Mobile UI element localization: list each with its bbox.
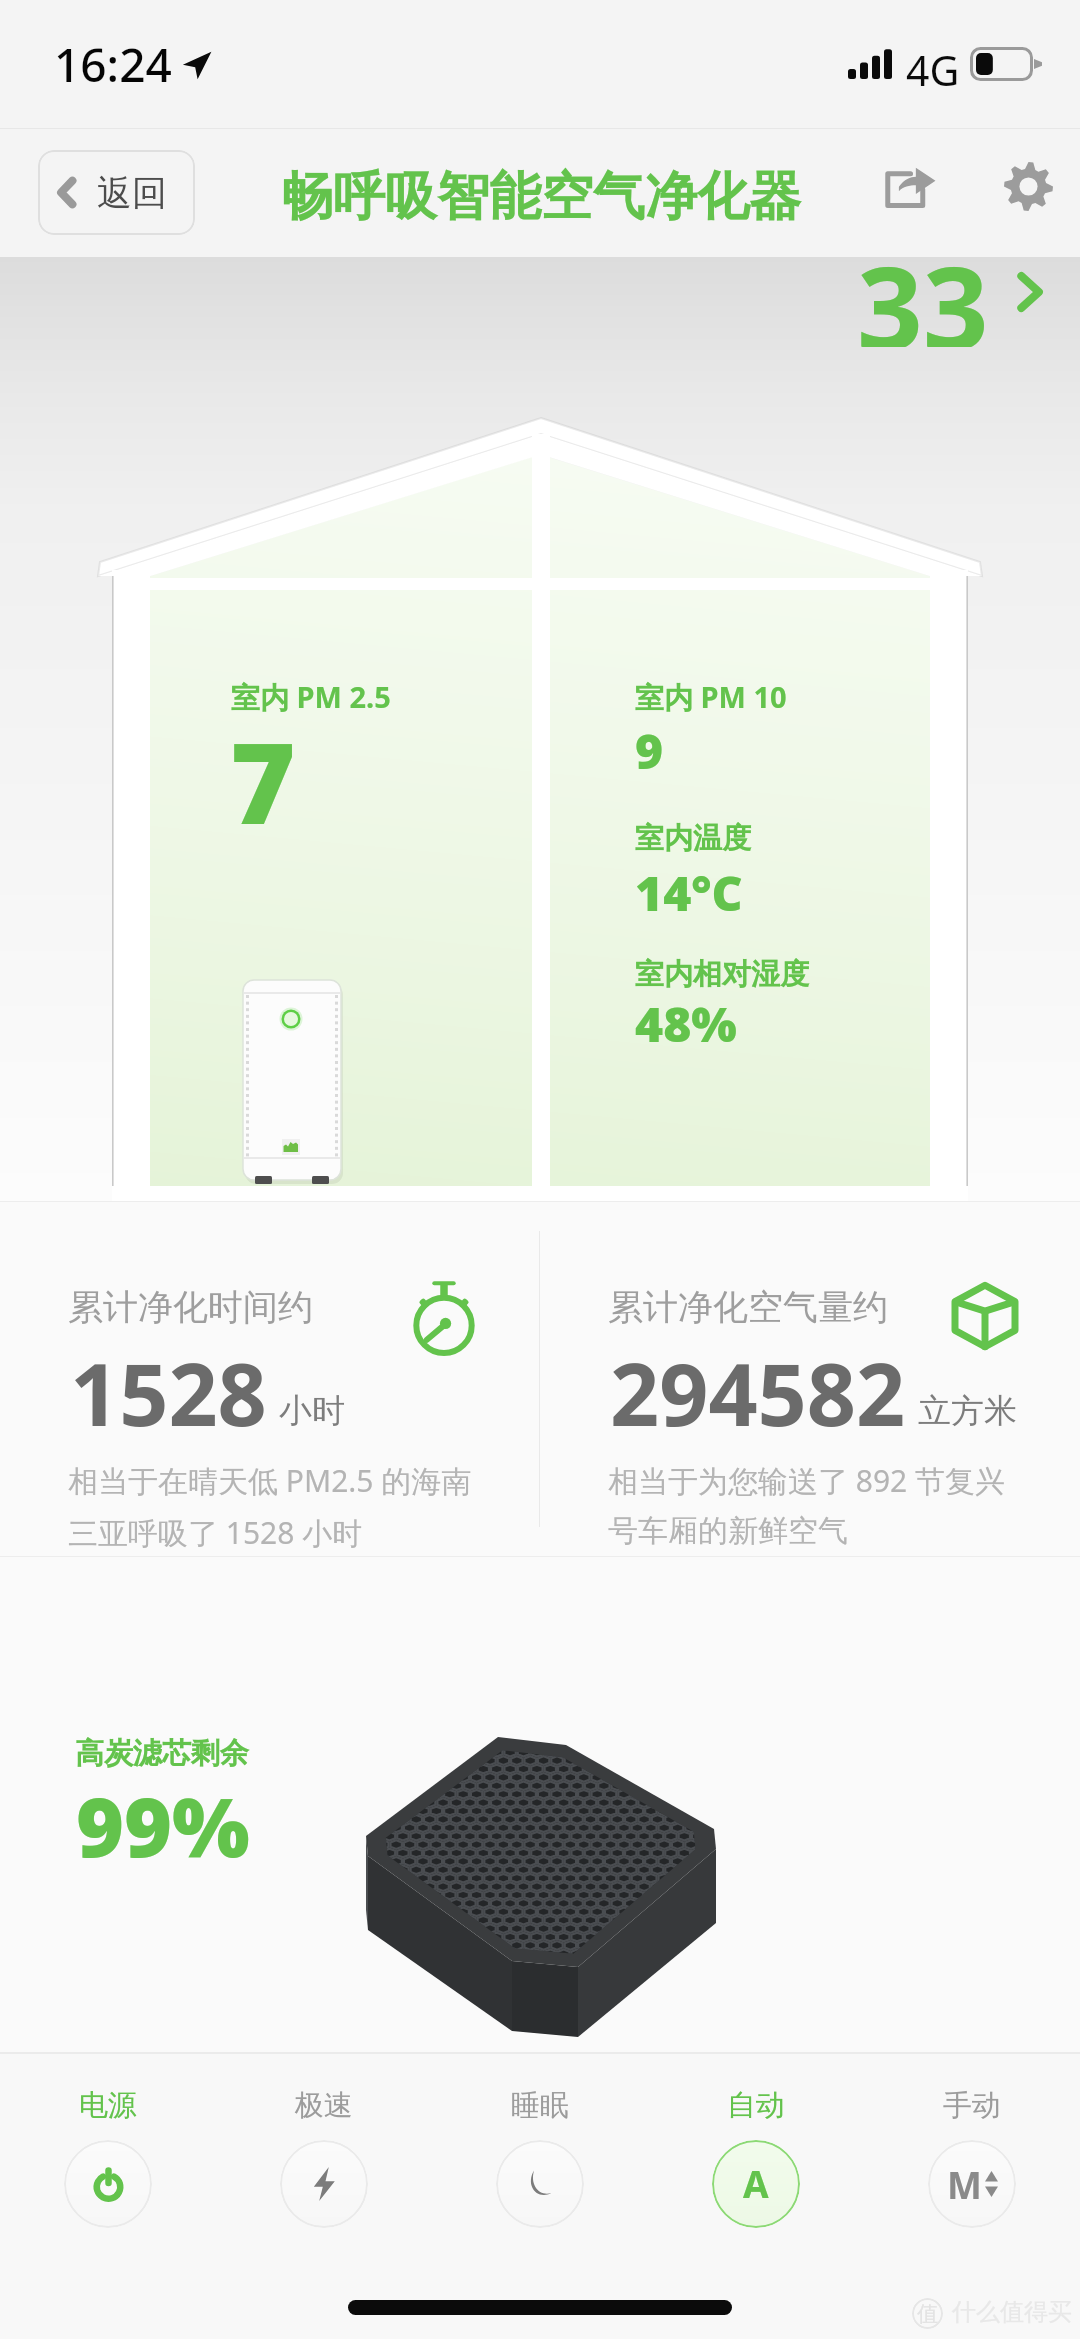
staticText: 16:24: [54, 33, 172, 96]
staticText: 室内 PM 10: [635, 677, 787, 717]
button[interactable]: 累计净化时间约: [0, 1201, 540, 1557]
button[interactable]: 电源: [28, 2087, 188, 2228]
button[interactable]: 累计净化空气量约: [540, 1201, 1080, 1557]
staticText: 室内温度: [635, 820, 751, 857]
staticText: 小时: [279, 1390, 345, 1432]
staticText: 相当于为您输送了 892 节复兴: [608, 1460, 1006, 1501]
staticText: 相当于在晴天低 PM2.5 的海南: [68, 1460, 472, 1501]
staticText: A: [743, 2158, 769, 2208]
staticText: 7: [230, 704, 296, 857]
button[interactable]: 自动: [676, 2087, 836, 2228]
staticText: 48%: [635, 991, 737, 1056]
staticText: 返回: [97, 171, 167, 215]
staticText: 99%: [76, 1769, 250, 1881]
staticText: 9: [635, 718, 664, 783]
staticText: 值: [917, 2301, 938, 2327]
staticText: 室内相对湿度: [635, 956, 809, 993]
button[interactable]: 33: [845, 250, 1045, 370]
staticText: M: [947, 2159, 982, 2209]
button[interactable]: 睡眠: [460, 2087, 620, 2228]
staticText: 三亚呼吸了 1528 小时: [68, 1512, 363, 1553]
staticText: 累计净化时间约: [68, 1285, 313, 1329]
staticText: 14°C: [635, 860, 743, 925]
staticText: 电源: [79, 2087, 137, 2124]
staticText: 1528: [70, 1334, 267, 1451]
staticText: 畅呼吸智能空气净化器: [281, 164, 801, 230]
staticText: 室内 PM 2.5: [231, 677, 391, 717]
button[interactable]: 手动: [892, 2087, 1052, 2228]
staticText: 立方米: [918, 1390, 1017, 1432]
button[interactable]: 返回: [38, 150, 195, 235]
button[interactable]: Share: [866, 146, 954, 234]
staticText: 自动: [727, 2087, 785, 2124]
staticText: 手动: [943, 2087, 1001, 2124]
staticText: 极速: [295, 2087, 353, 2124]
staticText: 睡眠: [511, 2087, 569, 2124]
staticText: 什么值得买: [952, 2297, 1072, 2327]
staticText: 高炭滤芯剩余: [75, 1735, 249, 1772]
staticText: 累计净化空气量约: [608, 1285, 888, 1329]
button[interactable]: 极速: [244, 2087, 404, 2228]
staticText: 号车厢的新鲜空气: [608, 1512, 848, 1550]
staticText: 294582: [610, 1334, 906, 1451]
staticText: 4G: [906, 42, 960, 98]
button[interactable]: Settings: [984, 146, 1072, 234]
staticText: 33: [857, 227, 989, 347]
